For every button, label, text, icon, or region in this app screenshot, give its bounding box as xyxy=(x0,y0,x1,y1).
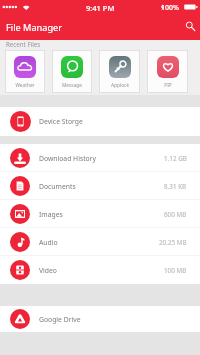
staticText: 20.25 MB xyxy=(159,238,187,247)
button[interactable]: Documents xyxy=(0,172,200,200)
staticText: PIP xyxy=(164,82,172,89)
staticText: Device Storge xyxy=(39,117,83,126)
button[interactable]: Download History xyxy=(0,144,200,172)
button[interactable]: Message xyxy=(52,50,92,93)
staticText: 600 MB xyxy=(164,210,187,219)
staticText: 100% xyxy=(161,3,179,13)
staticText: Recent Files xyxy=(6,40,41,48)
staticText: 100 MB xyxy=(164,266,187,275)
button[interactable]: Google Drive xyxy=(0,306,200,332)
staticText: 9:41 PM xyxy=(86,3,115,13)
button[interactable]: Search xyxy=(182,18,198,34)
button[interactable]: Applock xyxy=(99,50,140,93)
staticText: Message xyxy=(62,82,82,89)
staticText: Applock xyxy=(111,82,129,89)
staticText: Audio xyxy=(39,238,58,247)
button[interactable]: PIP xyxy=(147,50,188,93)
button[interactable]: Images xyxy=(0,200,200,228)
button[interactable]: Device Storge xyxy=(0,107,200,136)
button[interactable]: Video xyxy=(0,256,200,284)
staticText: 1.12 GB xyxy=(164,154,187,163)
staticText: 8.31 KB xyxy=(164,182,187,191)
staticText: Video xyxy=(39,266,57,275)
staticText: File Manager xyxy=(6,21,63,34)
staticText: Google Drive xyxy=(39,315,81,324)
staticText: Images xyxy=(39,210,63,219)
staticText: Documents xyxy=(39,182,76,191)
staticText: Download History xyxy=(39,154,96,163)
button[interactable]: Audio xyxy=(0,228,200,256)
staticText: Weather xyxy=(15,82,35,89)
button[interactable]: Weather xyxy=(5,50,45,93)
